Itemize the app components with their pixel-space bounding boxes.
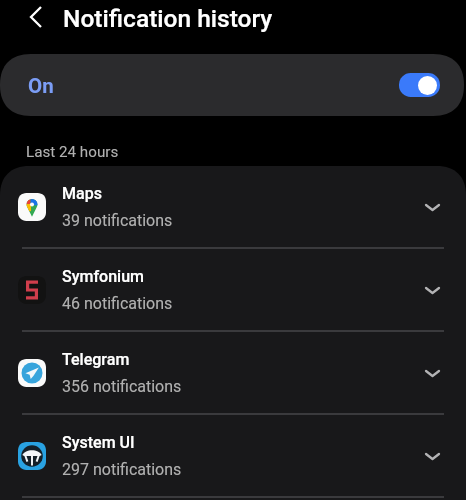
staticText: 297 notifications bbox=[62, 460, 182, 479]
button[interactable]: Expand bbox=[402, 343, 463, 403]
button[interactable]: Telegram bbox=[0, 332, 466, 413]
staticText: Notification history bbox=[63, 4, 273, 33]
button[interactable]: System UI bbox=[0, 415, 466, 496]
staticText: Symfonium bbox=[62, 267, 144, 286]
button[interactable]: Expand bbox=[402, 177, 463, 237]
staticText: Telegram bbox=[62, 350, 130, 369]
staticText: Last 24 hours bbox=[26, 143, 119, 161]
staticText: Maps bbox=[62, 184, 102, 203]
button[interactable]: Expand bbox=[402, 426, 463, 486]
button[interactable]: Back bbox=[18, 0, 53, 34]
button[interactable]: Maps bbox=[0, 166, 466, 247]
staticText: 356 notifications bbox=[62, 377, 182, 396]
button[interactable]: Symfonium bbox=[0, 249, 466, 330]
staticText: 46 notifications bbox=[62, 294, 173, 313]
staticText: 39 notifications bbox=[62, 211, 173, 230]
button[interactable]: On bbox=[0, 54, 464, 116]
button[interactable]: Toggle notification history bbox=[399, 73, 440, 97]
button[interactable]: Expand bbox=[402, 260, 463, 320]
staticText: On bbox=[28, 74, 54, 98]
staticText: System UI bbox=[62, 433, 135, 452]
